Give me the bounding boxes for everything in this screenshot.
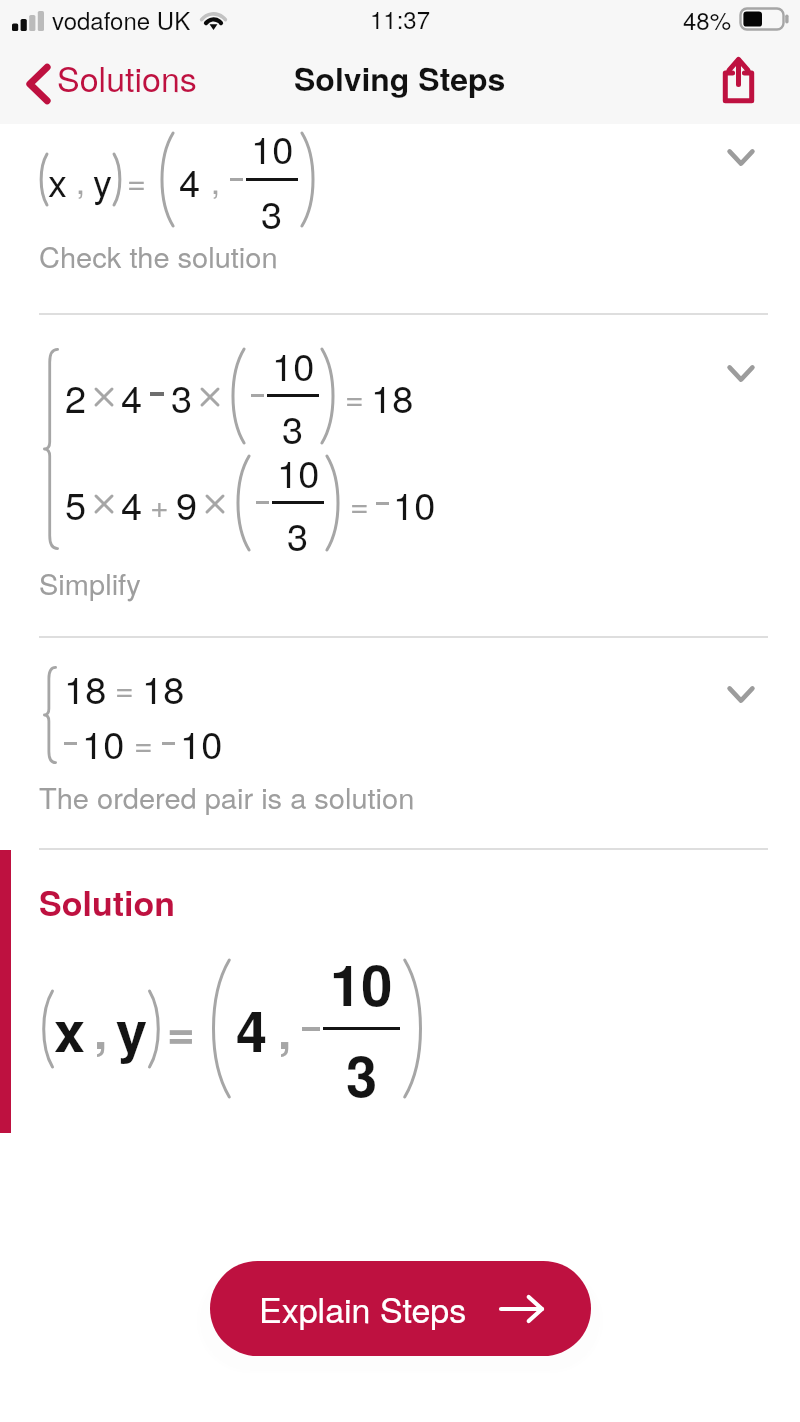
staticText: x: [54, 989, 86, 1069]
staticText: Solution: [39, 878, 175, 927]
button[interactable]: Expand step: [710, 126, 772, 188]
button[interactable]: 2: [0, 315, 800, 636]
staticText: 9: [176, 476, 198, 530]
button[interactable]: Expand step: [710, 663, 772, 725]
staticText: Explain Steps: [259, 1284, 467, 1333]
button[interactable]: Expand step: [710, 342, 772, 404]
staticText: ,: [211, 157, 220, 203]
staticText: =: [167, 995, 195, 1063]
staticText: 10: [180, 715, 223, 769]
staticText: vodafone UK: [52, 2, 191, 36]
button[interactable]: 18: [0, 638, 800, 848]
staticText: 4: [179, 153, 201, 207]
staticText: +: [150, 481, 169, 527]
staticText: 10: [277, 444, 320, 498]
staticText: 48%: [683, 2, 732, 36]
staticText: 4: [121, 369, 143, 423]
button[interactable]: Explain Steps: [210, 1261, 591, 1356]
staticText: 3: [346, 1034, 378, 1114]
staticText: 10: [272, 337, 315, 391]
staticText: x: [48, 153, 68, 207]
staticText: Simplify: [39, 562, 141, 604]
staticText: 3: [171, 369, 193, 423]
staticText: 18: [142, 660, 185, 714]
staticText: Check the solution: [39, 235, 278, 277]
staticText: 10: [393, 476, 436, 530]
staticText: ,: [76, 157, 85, 203]
staticText: 18: [371, 369, 414, 423]
staticText: y: [93, 153, 113, 207]
staticText: =: [345, 373, 364, 419]
staticText: 3: [287, 507, 309, 561]
button[interactable]: Solutions: [0, 49, 207, 114]
button[interactable]: Share: [712, 54, 764, 106]
staticText: =: [350, 480, 369, 526]
staticText: Solving Steps: [294, 55, 506, 101]
staticText: ,: [94, 995, 108, 1063]
staticText: 18: [64, 660, 107, 714]
staticText: 10: [330, 943, 393, 1023]
staticText: 11:37: [370, 1, 431, 35]
staticText: =: [115, 664, 134, 710]
staticText: 4: [236, 989, 268, 1069]
staticText: 2: [65, 369, 87, 423]
staticText: =: [127, 157, 146, 203]
staticText: y: [116, 989, 148, 1069]
staticText: ,: [278, 995, 292, 1063]
staticText: 3: [261, 185, 283, 239]
staticText: =: [134, 719, 153, 765]
staticText: 3: [282, 400, 304, 454]
staticText: Solutions: [57, 53, 197, 102]
staticText: 4: [121, 476, 143, 530]
staticText: 10: [251, 120, 294, 174]
staticText: 5: [65, 476, 87, 530]
staticText: 10: [82, 715, 125, 769]
staticText: The ordered pair is a solution: [39, 776, 415, 818]
button[interactable]: x: [0, 124, 800, 313]
